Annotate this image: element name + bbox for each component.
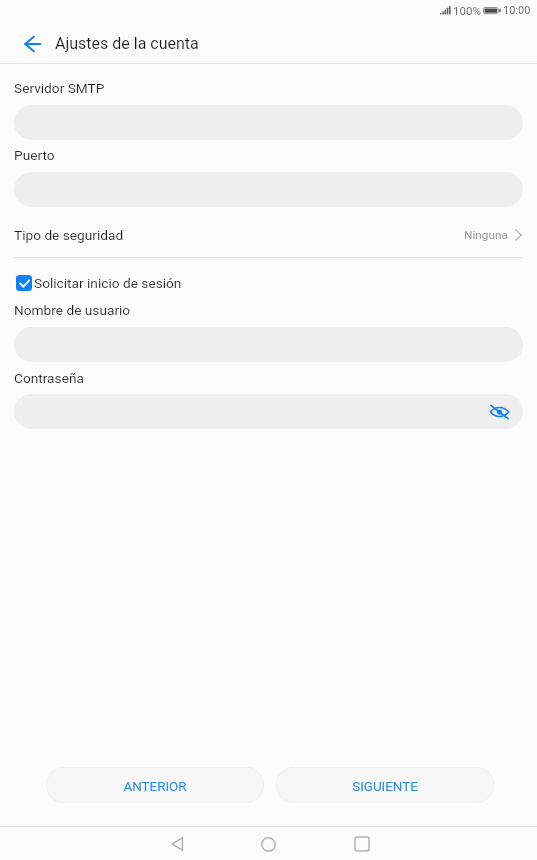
button[interactable]: ANTERIOR [46, 767, 264, 803]
staticText: Solicitar inicio de sesión [34, 275, 182, 291]
staticText: Ajustes de la cuenta [55, 34, 199, 53]
button[interactable]: Show password [14, 394, 523, 429]
staticText: Ninguna [464, 228, 508, 242]
staticText: Nombre de usuario [14, 302, 131, 318]
button[interactable]: Tipo de seguridad [0, 220, 537, 250]
button[interactable]: SIGUIENTE [276, 767, 494, 803]
button[interactable]: Show password [486, 399, 512, 425]
staticText: Contraseña [14, 370, 84, 386]
staticText: Servidor SMTP [14, 80, 105, 96]
staticText: Tipo de seguridad [14, 227, 124, 243]
staticText: SIGUIENTE [352, 779, 418, 795]
button[interactable]: Home [251, 827, 285, 860]
button[interactable]: Recents [345, 827, 379, 860]
staticText: ANTERIOR [123, 779, 187, 795]
button[interactable]: Solicitar inicio de sesión [0, 274, 537, 291]
staticText: 10:00 [503, 4, 531, 17]
button[interactable]: Back [160, 827, 194, 860]
button[interactable]: Back [12, 23, 53, 63]
staticText: 100% [453, 4, 481, 17]
staticText: Puerto [14, 147, 55, 163]
